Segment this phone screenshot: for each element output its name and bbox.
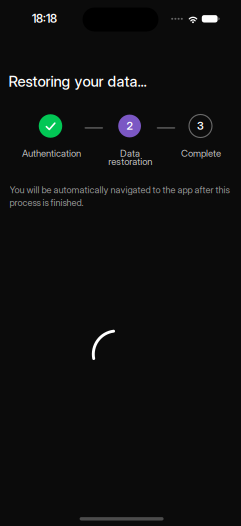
staticText: 2 <box>127 119 133 132</box>
staticText: You will be automatically navigated to t… <box>9 184 229 208</box>
staticText: Authentication <box>22 147 81 159</box>
staticText: Complete <box>181 147 221 159</box>
staticText: Data <box>120 147 140 159</box>
staticText: 3 <box>197 119 204 132</box>
staticText: restoration <box>108 156 152 167</box>
staticText: 18:18 <box>32 11 57 26</box>
staticText: Restoring your data... <box>8 72 146 90</box>
